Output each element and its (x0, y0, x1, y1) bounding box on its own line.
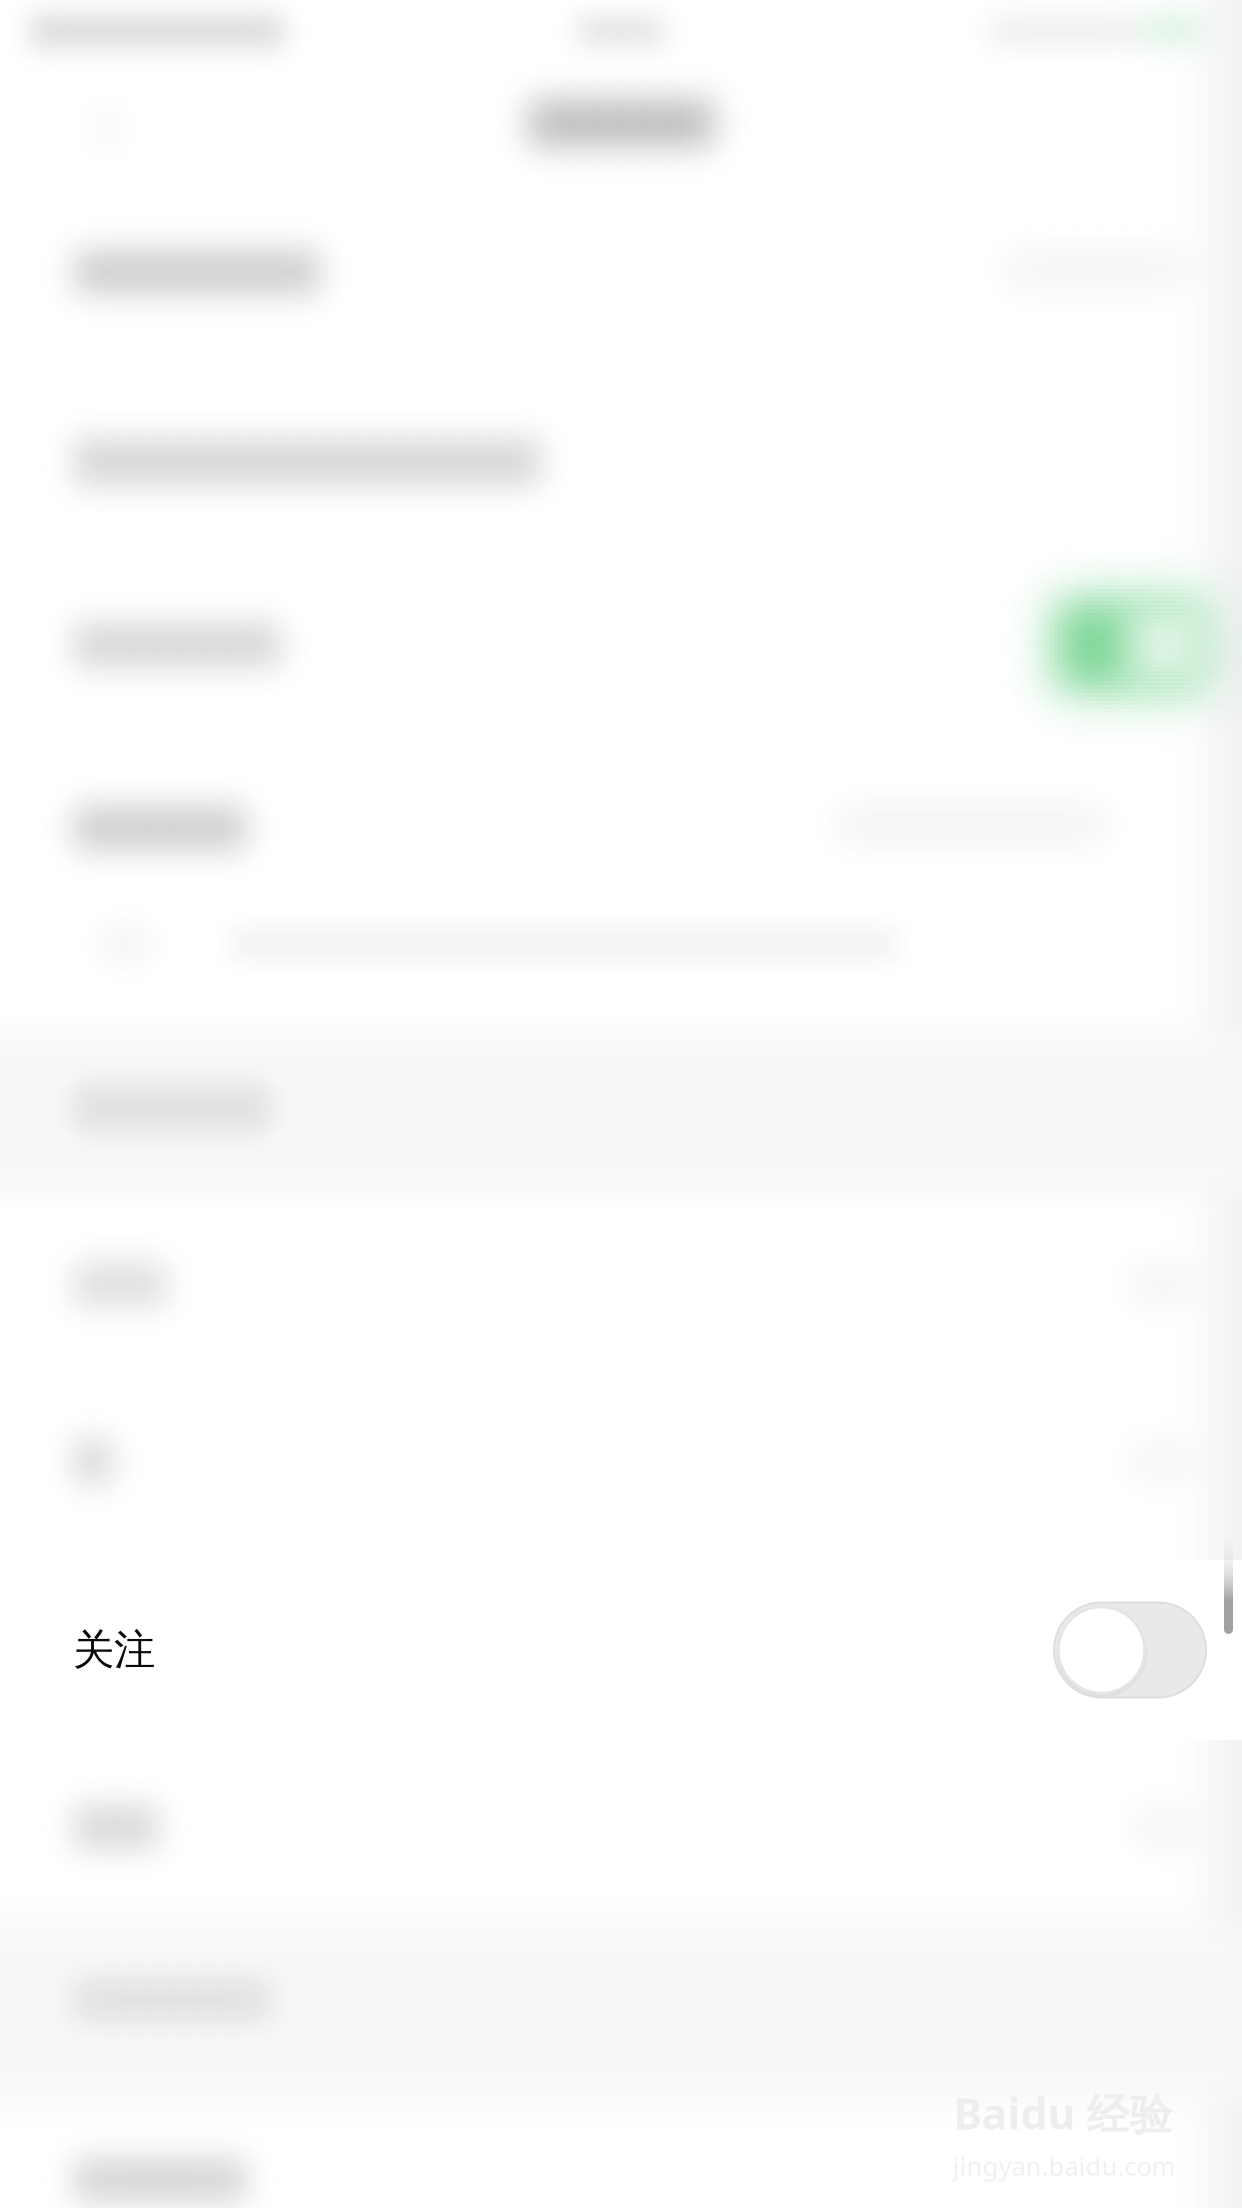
staticText: Baidu 经验 (953, 2085, 1172, 2141)
button[interactable] (0, 550, 1242, 740)
button[interactable] (0, 753, 1242, 903)
staticText: 关注 (73, 1625, 155, 1675)
staticText: jingyan.baidu.com (952, 2149, 1175, 2183)
button[interactable] (0, 1742, 1242, 1912)
button[interactable] (0, 197, 1242, 347)
button[interactable]: 关注 (0, 1560, 1242, 1740)
button[interactable] (0, 1197, 1242, 1372)
button[interactable] (0, 2100, 1242, 2208)
button[interactable] (0, 382, 1242, 542)
button[interactable]: Back (0, 0, 150, 150)
